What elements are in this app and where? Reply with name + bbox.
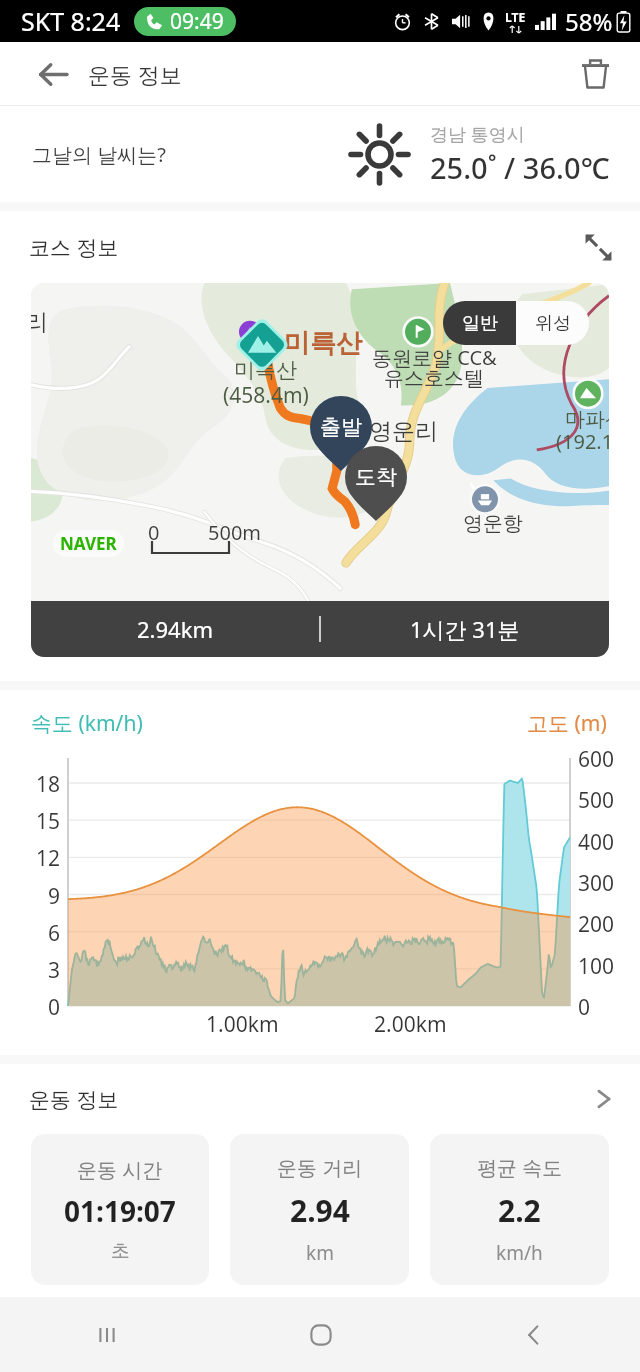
staticText: 운동 거리 [277,1154,363,1181]
button[interactable]: 운동 시간 [31,1134,209,1285]
button[interactable]: Delete [550,42,640,106]
staticText: 2.2 [498,1190,541,1231]
staticText: (192.1n [556,428,609,455]
staticText: 200 [578,910,615,939]
staticText: 400 [578,828,615,857]
staticText: 09:49 [170,7,224,36]
staticText: 동원로얄 CC& [372,344,497,371]
staticText: 마파산 [565,407,609,432]
staticText: 코스 정보 [29,233,119,262]
staticText: 0 [47,993,60,1022]
staticText: 300 [578,869,615,898]
staticText: 위성 [535,312,571,335]
staticText: km/h [496,1240,543,1266]
staticText: 18 [35,770,60,799]
staticText: 영운리 [369,417,438,446]
button[interactable]: 출발 [310,396,372,471]
staticText: 미륵산 [234,357,297,383]
staticText: 운동 시간 [77,1156,163,1183]
button[interactable]: Back [0,42,105,106]
staticText: 초 [111,1239,130,1263]
staticText: 고도 (m) [527,709,607,738]
staticText: 유스호스텔 [384,366,484,391]
staticText: 0 [148,519,160,546]
button[interactable]: Home [214,1297,427,1372]
staticText: 미륵산 [284,327,362,360]
staticText: 2.94km [137,614,213,644]
staticText: LTE [505,9,526,25]
button[interactable]: 운동 정보 [29,1064,612,1134]
staticText: 도착 [355,464,397,490]
staticText: 100 [578,952,615,981]
staticText: 일반 [462,312,498,335]
staticText: 2.00km [374,1010,447,1039]
staticText: 15 [35,807,60,836]
staticText: (458.4m) [223,381,309,410]
staticText: 경남 통영시 [430,122,525,147]
staticText: 그날의 날씨는? [32,141,166,168]
staticText: 출발 [320,414,362,440]
staticText: 1시간 31분 [410,614,520,644]
staticText: 6 [47,919,60,948]
button[interactable]: 운동 거리 [230,1134,409,1285]
staticText: SKT 8:24 [21,4,121,38]
button[interactable]: 평균 속도 [430,1134,609,1285]
button[interactable]: 도착 [345,446,407,521]
button[interactable]: 위성 [516,301,589,345]
staticText: 영운항 [463,511,523,536]
staticText: 평균 속도 [477,1154,563,1181]
staticText: 3 [47,956,60,985]
staticText: 운동 정보 [88,59,182,89]
staticText: 58% [565,5,613,38]
staticText: 속도 (km/h) [31,709,143,738]
staticText: 운동 정보 [29,1085,119,1114]
staticText: 1.00km [206,1010,279,1039]
staticText: 600 [578,745,615,774]
button[interactable]: Back [427,1297,640,1372]
button[interactable]: Recents [0,1297,214,1372]
staticText: NAVER [60,532,117,555]
staticText: 01:19:07 [64,1192,176,1230]
staticText: 2.94 [290,1190,350,1231]
staticText: 0 [578,993,591,1022]
staticText: km [306,1240,334,1266]
button[interactable]: Expand map [576,225,620,269]
staticText: 500 [578,786,615,815]
staticText: 500m [208,519,262,546]
staticText: 리 [31,308,48,337]
staticText: 9 [47,882,60,911]
button[interactable]: 일반 [443,301,516,345]
staticText: 25.0˚ / 36.0℃ [430,148,610,187]
staticText: 12 [35,844,60,873]
